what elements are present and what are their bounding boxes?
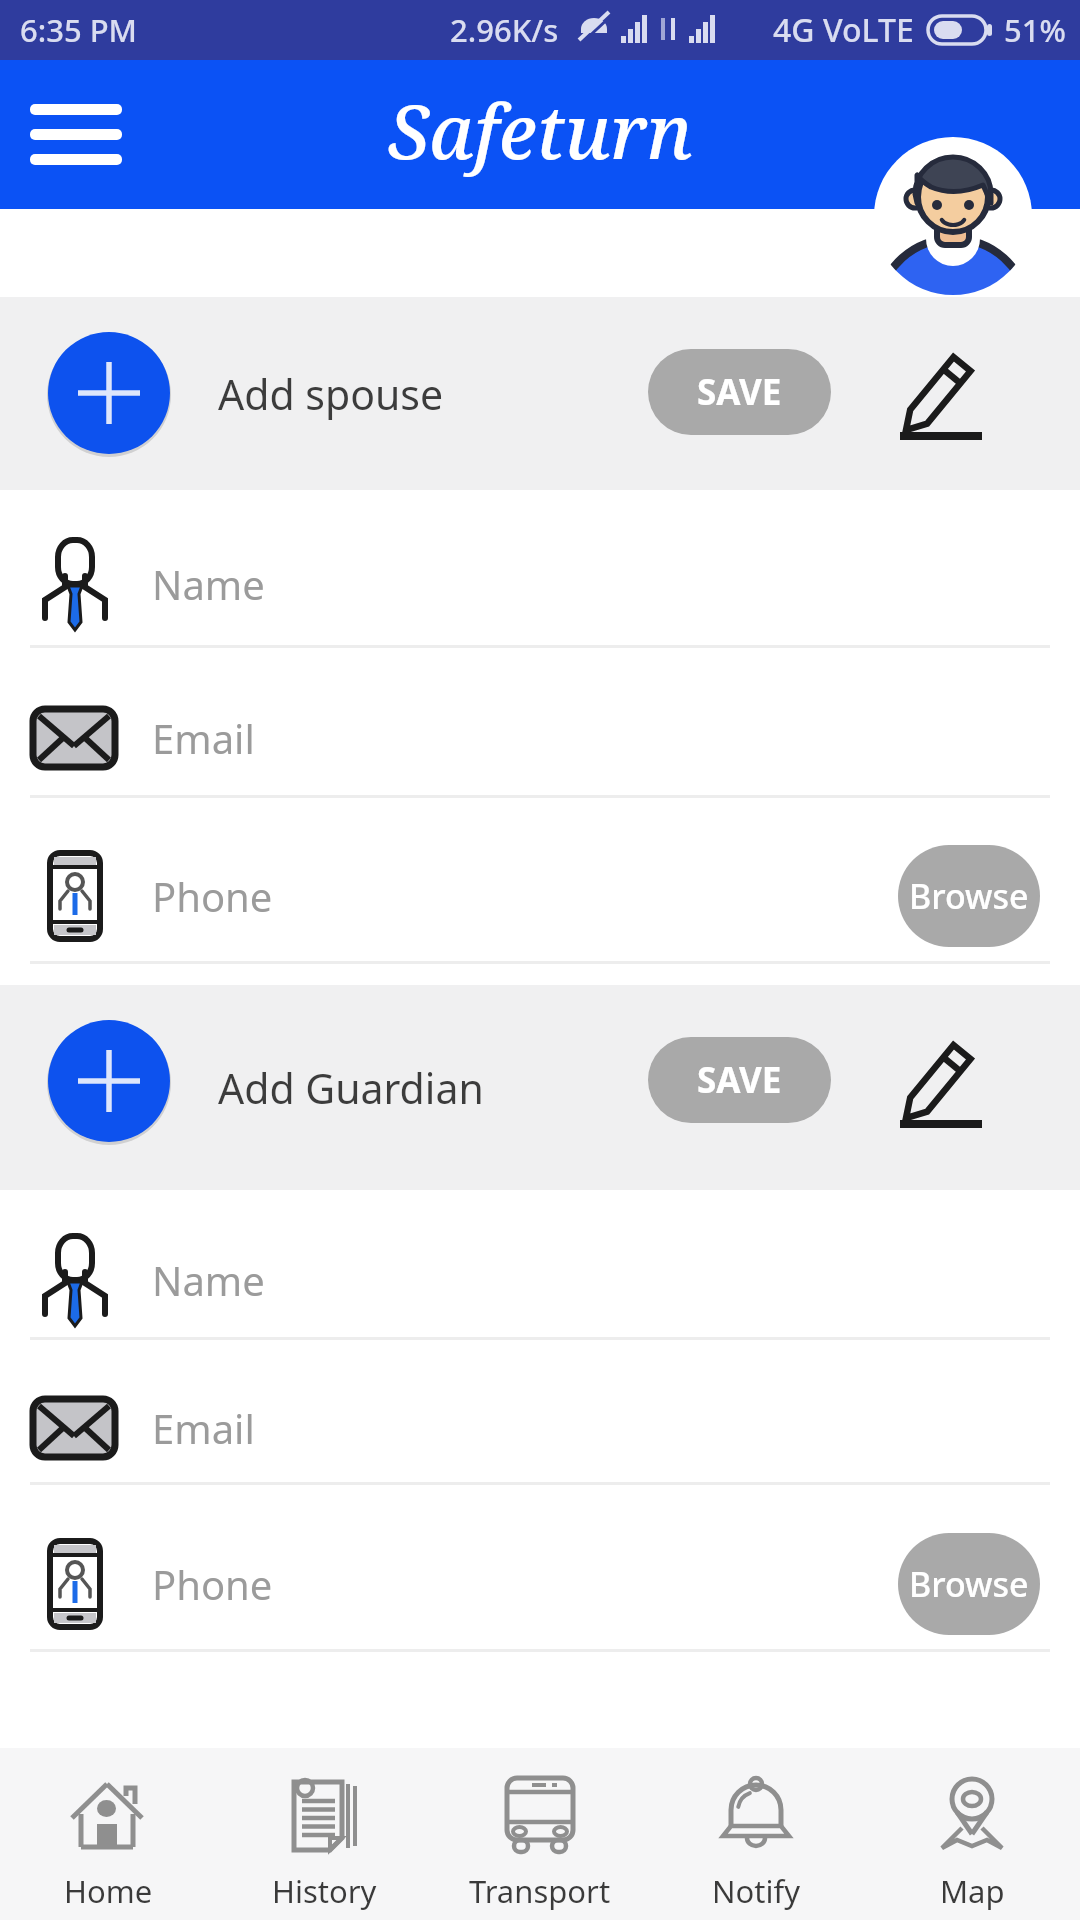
staticText: Browse — [909, 1561, 1029, 1607]
staticText: Email — [152, 1401, 255, 1455]
button[interactable]: Phone — [0, 1485, 1080, 1652]
staticText: SAVE — [697, 1056, 782, 1104]
button[interactable]: Name — [0, 1190, 1080, 1340]
staticText: Phone — [152, 1557, 273, 1611]
staticText: Notify — [712, 1870, 800, 1912]
staticText: Add Guardian — [218, 1060, 484, 1116]
button[interactable]: Email — [0, 1340, 1080, 1485]
staticText: Phone — [152, 869, 273, 923]
staticText: Name — [152, 557, 265, 611]
staticText: Home — [64, 1870, 153, 1912]
button[interactable]: Transport — [432, 1748, 648, 1920]
staticText: Name — [152, 1253, 265, 1307]
button[interactable]: Name — [0, 490, 1080, 648]
staticText: Email — [152, 711, 255, 765]
staticText: SAVE — [697, 368, 782, 416]
staticText: Safeturn — [388, 80, 693, 181]
staticText: 4G VoLTE — [773, 8, 914, 52]
button[interactable]: SAVE — [648, 1037, 831, 1123]
staticText: 2.96K/s — [450, 9, 559, 51]
button[interactable]: Email — [0, 648, 1080, 798]
button[interactable] — [48, 1020, 170, 1142]
staticText: Add spouse — [218, 366, 444, 422]
button[interactable]: Notify — [648, 1748, 864, 1920]
button[interactable] — [896, 352, 986, 444]
staticText: Map — [940, 1870, 1005, 1912]
button[interactable]: Home — [0, 1748, 216, 1920]
staticText: 6:35 PM — [20, 9, 138, 51]
button[interactable] — [30, 104, 122, 166]
staticText: Transport — [469, 1870, 611, 1912]
staticText: History — [272, 1870, 377, 1912]
button[interactable] — [896, 1040, 986, 1132]
button[interactable]: Phone — [0, 798, 1080, 964]
button[interactable]: Browse — [898, 1533, 1040, 1635]
staticText: Browse — [909, 873, 1029, 919]
button[interactable] — [48, 332, 170, 454]
button[interactable]: Browse — [898, 845, 1040, 947]
button[interactable] — [875, 135, 1031, 297]
button[interactable]: Map — [864, 1748, 1080, 1920]
button[interactable]: History — [216, 1748, 432, 1920]
button[interactable]: SAVE — [648, 349, 831, 435]
staticText: 51% — [1004, 9, 1066, 51]
